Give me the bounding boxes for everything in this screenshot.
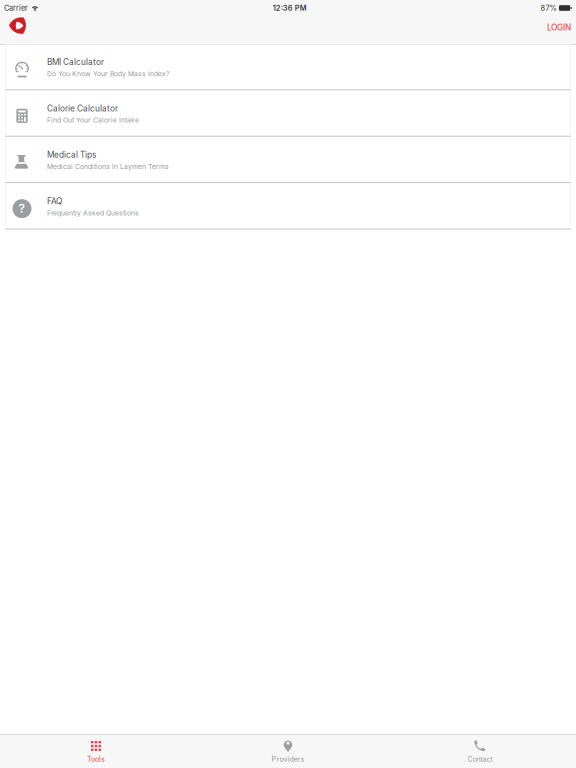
staticText: Do You Know Your Body Mass Index? [47, 70, 169, 78]
button[interactable]: BMI Calculator [5, 45, 571, 90]
staticText: Medical Conditions In Laymen Terms [47, 162, 169, 171]
staticText: Frequently Asked Questions [47, 209, 139, 217]
staticText: BMI Calculator [47, 57, 104, 67]
staticText: 87% [540, 3, 556, 12]
staticText: FAQ [47, 196, 62, 206]
button[interactable]: ? [5, 184, 571, 229]
button[interactable]: Contact [384, 735, 576, 768]
button[interactable]: Calorie Calculator [5, 91, 571, 137]
button[interactable]: Tools [0, 735, 192, 768]
staticText: LOGIN [547, 22, 571, 32]
staticText: Calorie Calculator [47, 103, 118, 113]
staticText: Carrier [4, 3, 28, 12]
staticText: Contact [467, 755, 492, 763]
staticText: Find Out Your Calorie Intake [47, 116, 139, 124]
staticText: Tools [87, 755, 105, 763]
staticText: 12:36 PM [273, 3, 307, 12]
button[interactable]: Medical Tips [5, 137, 571, 183]
staticText: Providers [271, 755, 304, 763]
staticText: Medical Tips [47, 150, 96, 160]
staticText: ? [18, 201, 25, 216]
button[interactable]: Providers [192, 735, 384, 768]
button[interactable]: LOGIN [542, 21, 576, 39]
